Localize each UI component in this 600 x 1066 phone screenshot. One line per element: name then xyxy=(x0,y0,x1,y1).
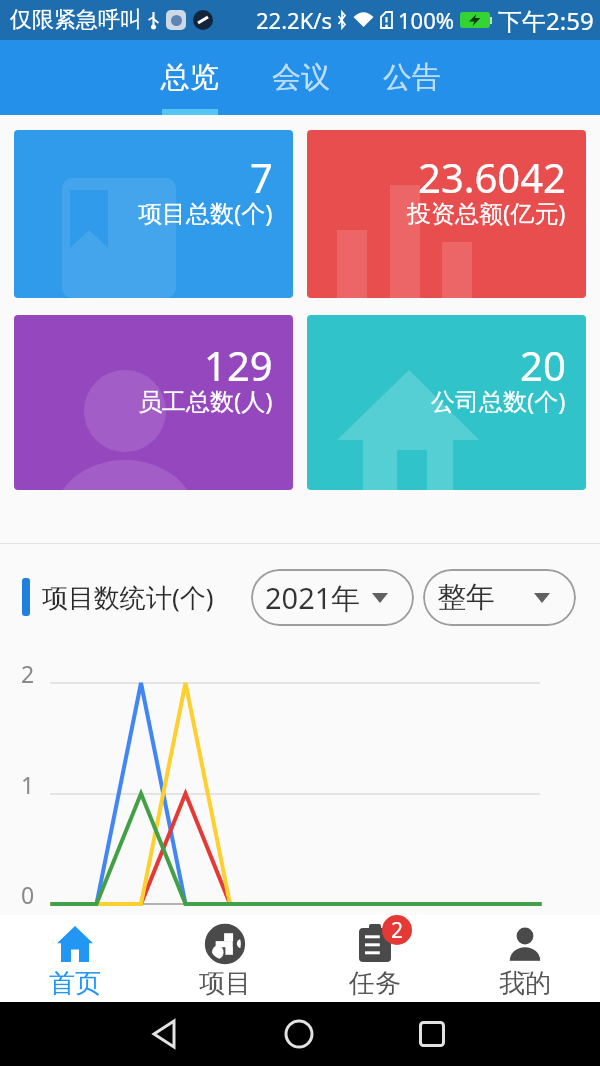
staticText: 129 xyxy=(204,338,273,392)
staticText: 员工总数(人) xyxy=(138,384,273,417)
button[interactable]: 20 xyxy=(307,315,586,490)
button[interactable]: 首页 xyxy=(0,915,150,1002)
button[interactable]: 23.6042 xyxy=(307,130,586,298)
staticText: 下午2:59 xyxy=(498,4,594,37)
button[interactable] xyxy=(279,1014,319,1054)
button[interactable]: 129 xyxy=(14,315,293,490)
staticText: 项目 xyxy=(199,967,251,1000)
staticText: 任务 xyxy=(349,967,401,1000)
staticText: 2021年 xyxy=(265,578,361,618)
staticText: 7 xyxy=(250,150,273,204)
staticText: 我的 xyxy=(499,967,551,1000)
staticText: 会议 xyxy=(272,59,330,96)
staticText: 20 xyxy=(520,338,566,392)
button[interactable]: 整年 xyxy=(423,569,576,626)
staticText: 首页 xyxy=(49,967,101,1000)
staticText: 0 xyxy=(21,879,35,910)
staticText: 100% xyxy=(398,5,455,35)
staticText: 总览 xyxy=(161,59,219,96)
staticText: 1 xyxy=(21,769,35,800)
staticText: 项目总数(个) xyxy=(138,196,273,229)
button[interactable]: 公告 xyxy=(356,40,467,115)
staticText: 2 xyxy=(21,658,35,689)
staticText: 整年 xyxy=(437,579,495,616)
button[interactable]: 项目 xyxy=(150,915,300,1002)
button[interactable]: 我的 xyxy=(450,915,600,1002)
staticText: 公告 xyxy=(383,59,441,96)
staticText: 2 xyxy=(391,916,404,945)
button[interactable]: 2021年 xyxy=(251,569,414,626)
staticText: 仅限紧急呼叫 xyxy=(10,6,142,34)
button[interactable]: 会议 xyxy=(245,40,356,115)
button[interactable] xyxy=(412,1014,452,1054)
staticText: 投资总额(亿元) xyxy=(407,196,566,229)
button[interactable]: 2 xyxy=(300,915,450,1002)
button[interactable] xyxy=(145,1014,185,1054)
staticText: 项目数统计(个) xyxy=(42,579,214,615)
staticText: 22.2K/s xyxy=(256,5,332,35)
staticText: 23.6042 xyxy=(418,150,566,204)
staticText: 公司总数(个) xyxy=(431,384,566,417)
button[interactable]: 7 xyxy=(14,130,293,298)
button[interactable]: 总览 xyxy=(134,40,245,115)
